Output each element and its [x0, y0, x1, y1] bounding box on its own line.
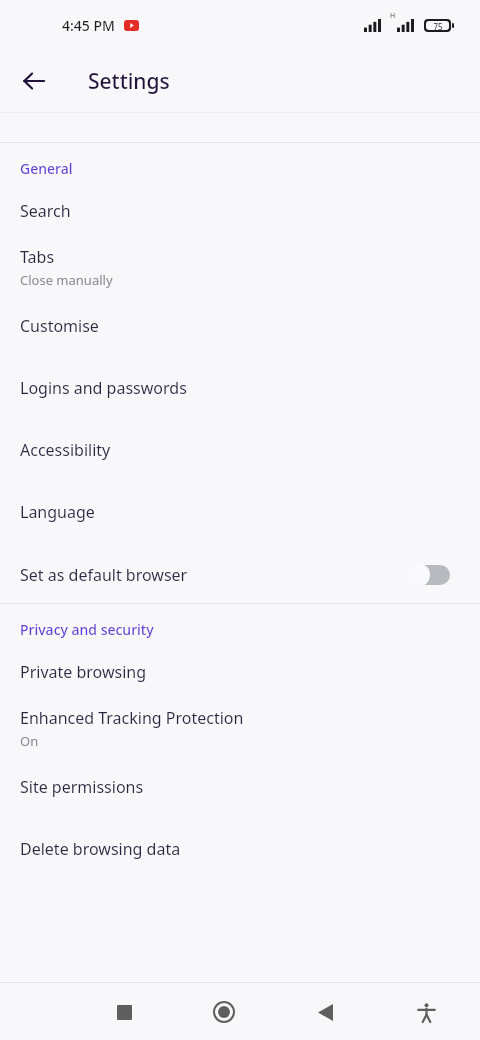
button[interactable]: Customise: [0, 289, 480, 337]
button[interactable]: Search: [0, 178, 480, 222]
button[interactable]: Back: [297, 984, 353, 1040]
button[interactable]: Tabs: [0, 222, 480, 289]
staticText: Private browsing: [20, 661, 147, 683]
staticText: Settings: [88, 67, 170, 96]
button[interactable]: Home: [196, 984, 252, 1040]
staticText: Set as default browser: [20, 564, 406, 586]
staticText: On: [20, 732, 39, 750]
staticText: Logins and passwords: [20, 377, 187, 399]
staticText: Customise: [20, 315, 99, 337]
staticText: 75: [433, 21, 443, 30]
staticText: Accessibility: [20, 439, 111, 461]
button[interactable]: Enhanced Tracking Protection: [0, 683, 480, 750]
button[interactable]: Private browsing: [0, 639, 480, 683]
staticText: H: [390, 11, 396, 21]
button[interactable]: Delete browsing data: [0, 798, 480, 860]
button[interactable]: Site permissions: [0, 750, 480, 798]
button[interactable]: Accessibility: [398, 984, 454, 1040]
button[interactable]: Accessibility: [0, 399, 480, 461]
button[interactable]: Set as default browser: [0, 523, 480, 587]
staticText: Tabs: [20, 246, 55, 268]
staticText: Language: [20, 501, 95, 523]
staticText: Search: [20, 200, 71, 222]
staticText: General: [20, 159, 73, 178]
staticText: Delete browsing data: [20, 838, 181, 860]
staticText: 4:45 PM: [62, 16, 115, 35]
staticText: Site permissions: [20, 776, 144, 798]
button[interactable]: Logins and passwords: [0, 337, 480, 399]
button[interactable]: Language: [0, 461, 480, 523]
staticText: Enhanced Tracking Protection: [20, 707, 244, 729]
staticText: Privacy and security: [20, 620, 154, 639]
staticText: Close manually: [20, 271, 113, 289]
button[interactable]: Recents: [96, 984, 152, 1040]
button[interactable]: Back: [12, 59, 56, 103]
